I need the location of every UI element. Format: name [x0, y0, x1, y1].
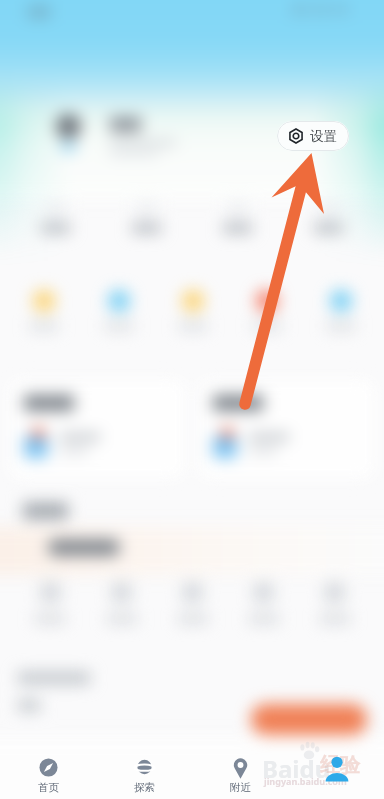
button[interactable]: 我的	[288, 741, 384, 799]
staticText: 设置	[310, 128, 337, 145]
staticText: 经验	[320, 753, 360, 778]
staticText: 探索	[134, 781, 155, 794]
staticText: 我的	[326, 781, 347, 794]
button[interactable]: 设置	[277, 121, 349, 151]
staticText: 首页	[38, 781, 59, 794]
button[interactable]: 首页	[0, 741, 96, 799]
staticText: jingyan.baidu.com	[264, 775, 347, 787]
button[interactable]: 附近	[192, 741, 288, 799]
staticText: Baidu	[262, 752, 331, 785]
button[interactable]: 探索	[96, 741, 192, 799]
staticText: 附近	[230, 781, 251, 794]
button[interactable]: 我的	[323, 752, 351, 780]
